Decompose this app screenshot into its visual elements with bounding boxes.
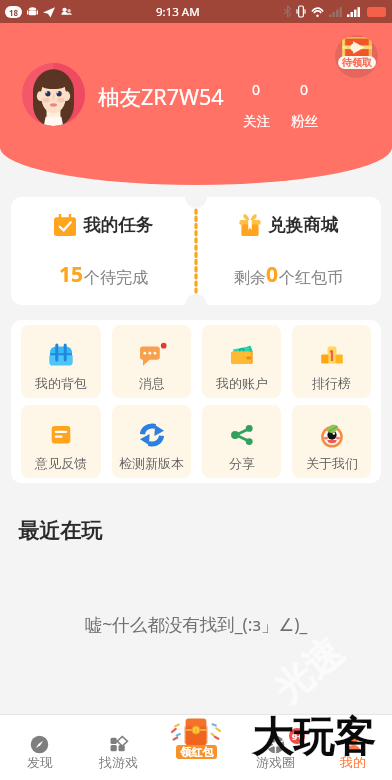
staticText: 我的任务 [83, 214, 153, 236]
staticText: 个待完成 [84, 268, 148, 288]
button[interactable]: 待领取宝箱 [335, 35, 378, 78]
button[interactable]: 我的任务 [11, 197, 196, 305]
staticText: 柚友ZR7W54 [98, 82, 224, 111]
staticText: 检测新版本 [119, 455, 184, 471]
button[interactable]: 领红包 [166, 715, 226, 771]
staticText: 我的背包 [35, 375, 87, 391]
staticText: 关注 [243, 113, 270, 130]
staticText: 我的 [340, 754, 366, 770]
staticText: 9:13 AM [156, 4, 200, 20]
button[interactable]: 检测新版本 [112, 405, 191, 478]
button[interactable]: 意见反馈 [21, 405, 101, 478]
staticText: 意见反馈 [35, 455, 87, 471]
staticText: 0 [266, 260, 279, 289]
staticText: 领红包 [180, 745, 213, 759]
button[interactable]: 消息 [112, 325, 191, 398]
staticText: 分享 [229, 455, 255, 471]
staticText: 9+ [292, 730, 303, 742]
button[interactable]: 关于我们 [292, 405, 371, 478]
staticText: 兑换商城 [268, 214, 338, 236]
staticText: 关于我们 [306, 455, 358, 471]
button[interactable]: 兑换商城 [196, 197, 381, 305]
staticText: 我的账户 [216, 375, 268, 391]
staticText: 剩余 [234, 268, 266, 288]
staticText: 大玩客 [252, 712, 375, 764]
button[interactable]: 9+ [236, 714, 314, 780]
button[interactable]: 找游戏 [79, 714, 158, 780]
staticText: 个红包币 [279, 268, 343, 288]
staticText: 光速 [263, 627, 353, 713]
staticText: 找游戏 [99, 754, 138, 770]
staticText: 18 [9, 7, 19, 18]
button[interactable] [22, 63, 85, 126]
staticText: 最近在玩 [18, 518, 102, 544]
button[interactable]: 发现 [0, 714, 79, 780]
button[interactable]: 我的背包 [21, 325, 101, 398]
button[interactable]: 我的 [314, 714, 392, 780]
staticText: 发现 [27, 754, 53, 770]
staticText: 排行榜 [312, 375, 351, 391]
staticText: 0 [300, 80, 309, 99]
staticText: 粉丝 [291, 113, 318, 130]
button[interactable]: 我的账户 [202, 325, 281, 398]
button[interactable]: 排行榜 [292, 325, 371, 398]
staticText: 15 [59, 260, 84, 289]
staticText: 嘘~什么都没有找到_(:з」∠)_ [0, 612, 392, 636]
staticText: 0 [252, 80, 261, 99]
staticText: 游戏圈 [256, 754, 295, 770]
button[interactable]: 分享 [202, 405, 281, 478]
button[interactable]: 0 [232, 80, 280, 130]
staticText: 待领取 [342, 56, 372, 69]
button[interactable]: 0 [280, 80, 328, 130]
staticText: 消息 [139, 375, 165, 391]
